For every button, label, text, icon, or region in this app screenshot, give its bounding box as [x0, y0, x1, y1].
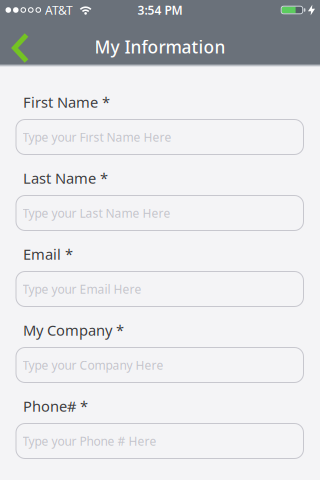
- staticText: Type your First Name Here: [22, 129, 171, 145]
- button[interactable]: Back: [0, 0, 26, 61]
- staticText: Type your Company Here: [22, 357, 163, 373]
- button[interactable]: Last Name *: [15, 195, 304, 231]
- staticText: AT&T: [45, 2, 73, 18]
- staticText: Type your Email Here: [22, 281, 141, 297]
- button[interactable]: Email *: [15, 271, 304, 307]
- button[interactable]: Phone# *: [15, 423, 304, 459]
- staticText: First Name *: [23, 92, 110, 112]
- staticText: Type your Phone # Here: [22, 433, 156, 449]
- staticText: 3:54 PM: [137, 2, 182, 18]
- staticText: My Company *: [23, 320, 124, 340]
- staticText: Last Name *: [23, 168, 108, 188]
- button[interactable]: My Company *: [15, 347, 304, 383]
- staticText: My Information: [94, 35, 225, 58]
- staticText: Type your Last Name Here: [22, 205, 170, 221]
- staticText: Phone# *: [23, 396, 88, 416]
- button[interactable]: First Name *: [15, 119, 304, 155]
- staticText: Email *: [23, 244, 73, 264]
